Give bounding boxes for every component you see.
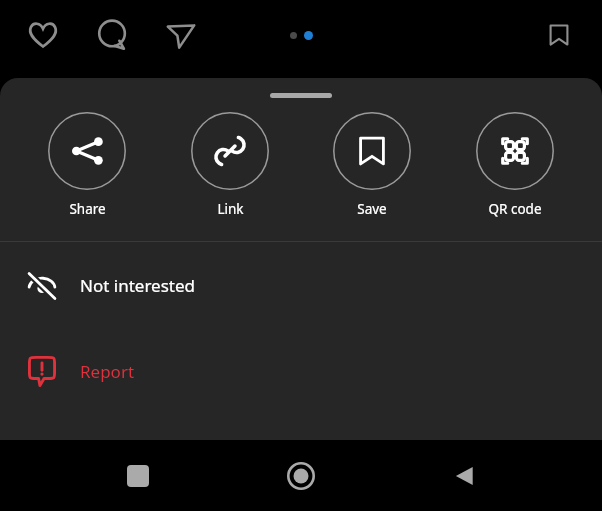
button[interactable]: Report: [0, 328, 602, 414]
button[interactable]: Like: [20, 12, 66, 58]
button[interactable]: Share: [32, 110, 142, 220]
button[interactable]: Recents: [112, 450, 164, 502]
button[interactable]: Link: [175, 110, 285, 220]
button[interactable]: Home: [275, 450, 327, 502]
staticText: Save: [357, 200, 387, 218]
button[interactable]: QR code: [460, 110, 570, 220]
button[interactable]: Share post: [158, 12, 204, 58]
button[interactable]: Back: [439, 450, 491, 502]
button[interactable]: Save: [317, 110, 427, 220]
staticText: Link: [217, 200, 244, 218]
staticText: QR code: [488, 200, 542, 218]
staticText: Share: [69, 200, 106, 218]
staticText: Not interested: [80, 274, 195, 297]
staticText: Report: [80, 360, 135, 383]
button[interactable]: Comment: [90, 12, 136, 58]
button[interactable]: Not interested: [0, 242, 602, 328]
button[interactable]: Save post: [536, 12, 582, 58]
